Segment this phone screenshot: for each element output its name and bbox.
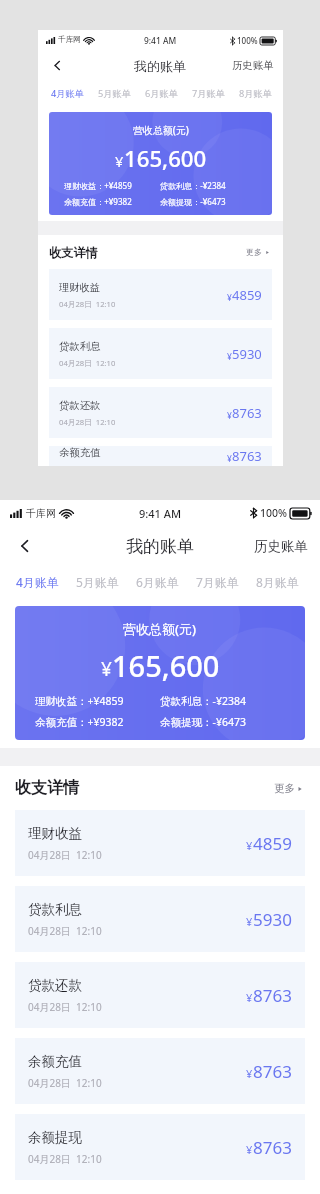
staticText: 理财收益：+¥4859 xyxy=(35,694,124,708)
staticText: 9:41 AM xyxy=(139,506,182,521)
button[interactable]: 6月账单 xyxy=(134,570,181,594)
staticText: 贷款还款 xyxy=(28,977,82,994)
button[interactable]: 营收总额(元) xyxy=(15,606,305,740)
staticText: ¥ xyxy=(246,1066,253,1081)
staticText: 8763 xyxy=(232,404,262,422)
staticText: 千库网 xyxy=(26,507,56,520)
button[interactable]: 余额提现 xyxy=(15,1114,305,1180)
staticText: 千库网 xyxy=(58,35,81,45)
staticText: 04月28日 12:10 xyxy=(28,1000,102,1014)
staticText: 收支详情 xyxy=(15,778,79,798)
button[interactable]: 8月账单 xyxy=(237,84,274,103)
button[interactable]: 理财收益 xyxy=(49,269,272,320)
staticText: 5月账单 xyxy=(98,87,131,100)
staticText: 余额充值 xyxy=(28,1053,82,1070)
button[interactable]: 贷款还款 xyxy=(15,962,305,1028)
staticText: ¥ xyxy=(227,292,232,303)
staticText: 收支详情 xyxy=(49,245,98,260)
button[interactable]: 贷款利息 xyxy=(49,328,272,379)
button[interactable]: 贷款还款 xyxy=(49,387,272,438)
staticText: 4859 xyxy=(232,286,262,304)
button[interactable]: 历史账单 xyxy=(242,532,320,561)
button[interactable]: 理财收益 xyxy=(15,810,305,876)
staticText: 04月28日 12:10 xyxy=(59,299,116,309)
staticText: 余额充值：+¥9382 xyxy=(35,715,124,729)
staticText: ¥ xyxy=(227,453,232,464)
button[interactable]: 4月账单 xyxy=(14,570,61,594)
button[interactable]: 4月账单 xyxy=(49,84,86,103)
staticText: 100% xyxy=(260,506,287,520)
staticText: ¥ xyxy=(101,656,112,682)
staticText: 贷款利息 xyxy=(28,901,82,918)
staticText: 7月账单 xyxy=(196,574,239,590)
staticText: 余额提现：-¥6473 xyxy=(160,196,226,207)
button[interactable]: 5月账单 xyxy=(96,84,133,103)
staticText: 余额提现：-¥6473 xyxy=(160,715,246,729)
staticText: 6月账单 xyxy=(136,574,179,590)
staticText: 营收总额(元) xyxy=(133,123,189,137)
button[interactable]: 6月账单 xyxy=(143,84,180,103)
staticText: 4859 xyxy=(253,832,292,855)
button[interactable]: 7月账单 xyxy=(194,570,241,594)
staticText: 8月账单 xyxy=(239,87,272,100)
staticText: 04月28日 12:10 xyxy=(28,848,102,862)
staticText: 营收总额(元) xyxy=(123,620,197,638)
staticText: 165,600 xyxy=(124,143,207,173)
staticText: 8763 xyxy=(232,447,262,465)
staticText: 贷款还款 xyxy=(59,399,101,412)
button[interactable]: 余额充值 xyxy=(49,446,272,466)
staticText: 更多 xyxy=(246,247,263,257)
staticText: ¥ xyxy=(227,410,232,421)
staticText: 04月28日 12:10 xyxy=(28,1152,102,1166)
button[interactable]: 更多 xyxy=(244,242,272,262)
staticText: 04月28日 12:10 xyxy=(59,358,116,368)
staticText: 我的账单 xyxy=(126,536,194,557)
staticText: 04月28日 12:10 xyxy=(59,417,116,427)
staticText: ¥ xyxy=(115,151,124,171)
staticText: ¥ xyxy=(246,914,253,929)
staticText: 7月账单 xyxy=(192,87,225,100)
button[interactable]: 更多 xyxy=(272,776,305,801)
staticText: 5月账单 xyxy=(76,574,119,590)
staticText: 8763 xyxy=(253,1060,292,1083)
staticText: 余额提现 xyxy=(28,1129,82,1146)
staticText: 理财收益：+¥4859 xyxy=(64,180,132,191)
staticText: ¥ xyxy=(227,351,232,362)
button[interactable]: 7月账单 xyxy=(190,84,227,103)
button[interactable]: Back xyxy=(10,531,40,561)
button[interactable]: 5月账单 xyxy=(74,570,121,594)
staticText: 100% xyxy=(237,35,258,46)
staticText: 余额充值 xyxy=(59,446,101,459)
staticText: 4月账单 xyxy=(51,87,84,100)
button[interactable]: 8月账单 xyxy=(254,570,301,594)
staticText: ¥ xyxy=(246,1142,253,1157)
staticText: 8763 xyxy=(253,1136,292,1159)
staticText: 历史账单 xyxy=(232,59,274,72)
staticText: 贷款利息：-¥2384 xyxy=(160,694,246,708)
button[interactable]: 余额充值 xyxy=(15,1038,305,1104)
button[interactable]: 贷款利息 xyxy=(15,886,305,952)
staticText: 04月28日 12:10 xyxy=(28,924,102,938)
staticText: 理财收益 xyxy=(59,281,101,294)
button[interactable]: 历史账单 xyxy=(223,54,283,77)
staticText: 我的账单 xyxy=(134,58,187,74)
staticText: 理财收益 xyxy=(28,825,82,842)
staticText: 余额充值：+¥9382 xyxy=(64,196,132,207)
staticText: ¥ xyxy=(246,838,253,853)
staticText: 165,600 xyxy=(112,646,220,685)
staticText: 8月账单 xyxy=(256,574,299,590)
button[interactable]: 营收总额(元) xyxy=(49,112,272,215)
staticText: 更多 xyxy=(274,782,295,795)
button[interactable]: Back xyxy=(46,54,69,77)
staticText: 贷款利息：-¥2384 xyxy=(160,180,226,191)
staticText: 贷款利息 xyxy=(59,340,101,353)
staticText: 04月28日 12:10 xyxy=(28,1076,102,1090)
staticText: 5930 xyxy=(253,908,292,931)
staticText: 8763 xyxy=(253,984,292,1007)
staticText: 历史账单 xyxy=(254,538,308,555)
staticText: 6月账单 xyxy=(145,87,178,100)
staticText: 9:41 AM xyxy=(144,35,177,46)
staticText: 4月账单 xyxy=(16,574,59,590)
staticText: 5930 xyxy=(232,345,262,363)
